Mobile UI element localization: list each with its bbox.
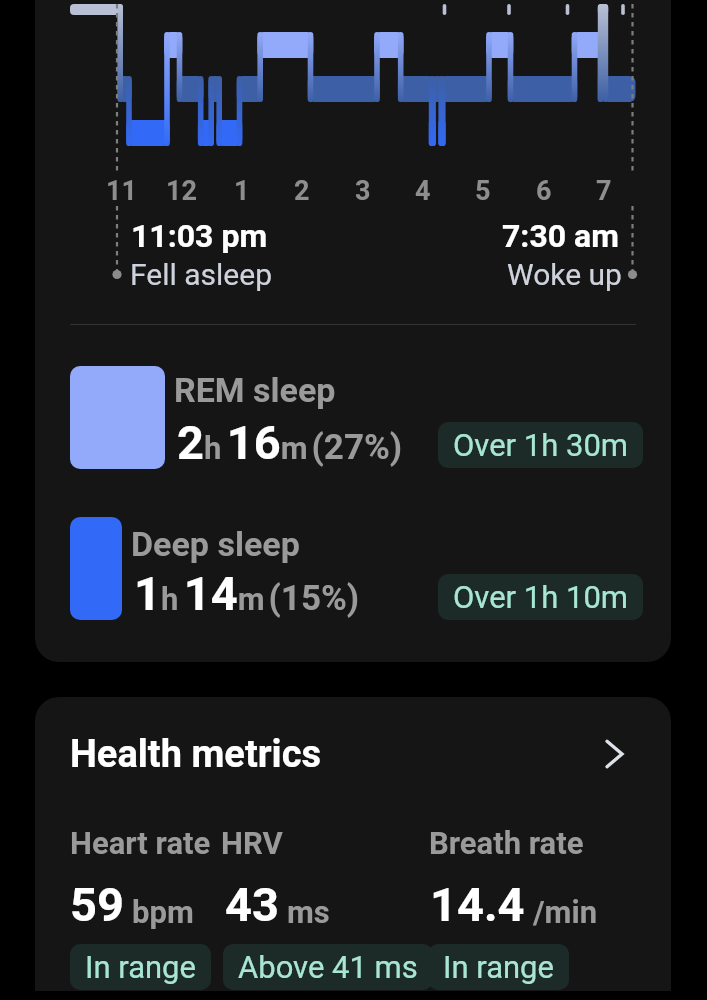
staticText: Above 41 ms [238,949,418,985]
other: Open health metrics [603,733,645,775]
staticText: 3 [355,175,371,207]
staticText: Heart rate [70,825,211,861]
staticText: 11:03 pm [131,217,268,255]
staticText: 2h 16m (27%) [177,415,403,470]
staticText: 4 [415,175,431,207]
button[interactable] [35,507,671,630]
staticText: Fell asleep [130,257,272,292]
staticText: 2 [294,175,310,207]
button[interactable] [35,356,671,479]
staticText: Breath rate [429,825,584,861]
staticText: 14.4 [430,877,525,932]
staticText: bpm [132,894,194,930]
staticText: 7 [596,175,612,207]
button[interactable]: Over 1h 10m [438,574,643,620]
staticText: 11 [106,175,137,207]
staticText: 59 [70,877,124,932]
staticText: 5 [475,175,491,207]
staticText: 7:30 am [502,217,619,255]
button[interactable]: Above 41 ms [223,944,433,990]
staticText: /min [533,894,598,930]
staticText: 6 [536,175,552,207]
button[interactable]: In range [70,944,211,990]
staticText: 1h 14m (15%) [134,566,360,621]
staticText: In range [85,949,196,985]
staticText: ms [287,894,330,930]
staticText: In range [443,949,554,985]
staticText: Woke up [507,257,622,292]
button[interactable]: Over 1h 30m [438,422,643,468]
staticText: 1 [234,175,250,207]
button[interactable]: Health metrics [35,725,671,783]
staticText: Over 1h 10m [453,579,628,615]
staticText: 12 [166,175,197,207]
staticText: 43 [225,877,279,932]
staticText: REM sleep [174,370,336,410]
staticText: Health metrics [70,732,322,777]
staticText: Deep sleep [131,524,300,564]
button[interactable]: In range [428,944,569,990]
staticText: Over 1h 30m [453,427,628,463]
staticText: HRV [221,825,283,861]
